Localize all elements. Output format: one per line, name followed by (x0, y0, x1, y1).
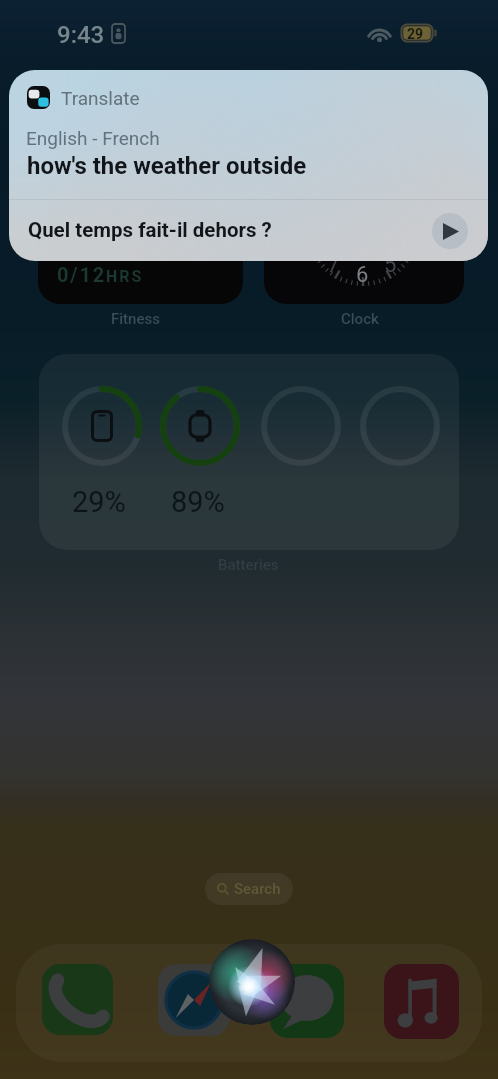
staticText: English - French (26, 127, 160, 149)
staticText: how's the weather outside (27, 152, 307, 180)
button[interactable]: Play translation (432, 213, 468, 249)
staticText: Fitness (111, 310, 160, 328)
staticText: Batteries (218, 556, 279, 574)
button[interactable]: Siri (209, 939, 295, 1025)
staticText: Search (234, 880, 281, 898)
staticText: 89% (171, 485, 225, 519)
button[interactable]: Safari (158, 964, 230, 1036)
button[interactable]: Messages (270, 964, 344, 1038)
staticText: 0/12 (57, 263, 107, 286)
staticText: Translate (61, 87, 140, 109)
staticText: Quel temps fait-il dehors ? (28, 218, 272, 242)
staticText: 29% (72, 485, 126, 519)
button[interactable]: 29% (39, 354, 459, 550)
staticText: 7 (327, 252, 340, 278)
staticText: 5 (384, 252, 397, 278)
button[interactable]: Music (384, 964, 459, 1039)
button[interactable]: 6 (264, 190, 464, 304)
button[interactable]: 0/12 (38, 190, 243, 304)
button[interactable]: Phone (42, 964, 113, 1035)
staticText: 9:43 (57, 21, 105, 49)
staticText: 6 (356, 262, 369, 288)
staticText: Clock (341, 310, 379, 328)
button[interactable]: Translate (9, 70, 488, 261)
staticText: HRS (106, 267, 144, 286)
button[interactable]: Search (205, 873, 293, 905)
staticText: 29 (407, 26, 424, 42)
